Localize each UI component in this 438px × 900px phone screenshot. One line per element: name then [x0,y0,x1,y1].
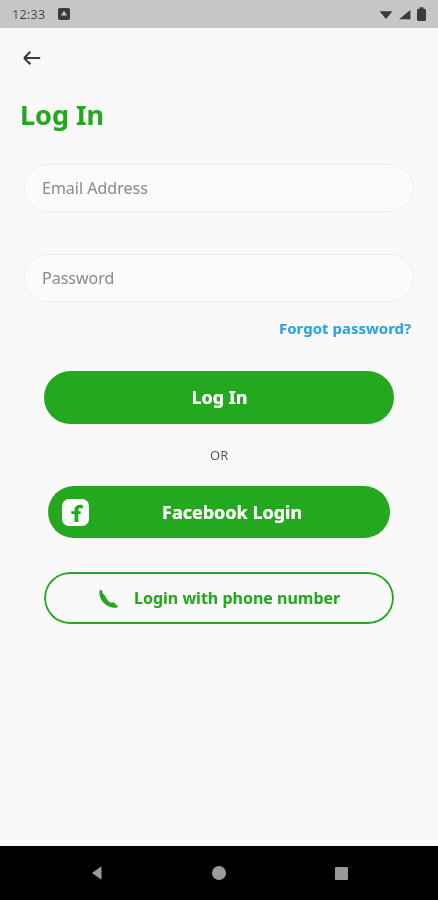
button[interactable]: Login with phone number [44,572,394,624]
staticText: Log In [20,96,105,133]
button[interactable]: Back [12,38,52,78]
button[interactable]: Recent apps [317,849,365,897]
button[interactable]: Email Address [24,164,414,212]
button[interactable]: Password [24,254,414,302]
staticText: Login with phone number [134,587,341,609]
staticText: Log In [191,385,248,410]
staticText: Password [42,267,115,289]
staticText: Email Address [42,177,148,199]
button[interactable]: Forgot password? [275,314,416,342]
button[interactable]: Home [195,849,243,897]
button[interactable]: Facebook Login [48,486,390,538]
staticText: Facebook Login [162,500,303,525]
button[interactable]: Back [74,849,122,897]
staticText: OR [210,446,229,464]
button[interactable]: Log In [44,371,394,424]
staticText: 12:33 [12,5,46,23]
staticText: Forgot password? [279,318,412,338]
